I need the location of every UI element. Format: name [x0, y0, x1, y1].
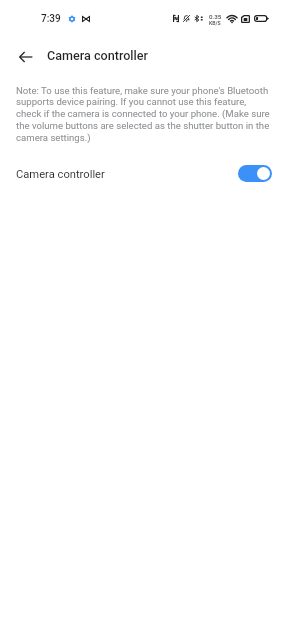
staticText: 7:39 [41, 13, 61, 25]
staticText: Camera controller [16, 168, 105, 181]
staticText: Note: To use this feature, make sure you… [16, 85, 272, 143]
staticText: KB/S [209, 20, 221, 26]
button[interactable]: Camera controller [0, 152, 288, 196]
staticText: Camera controller [47, 48, 148, 63]
staticText: 0.35 [209, 13, 222, 20]
button[interactable]: Back [8, 39, 44, 75]
